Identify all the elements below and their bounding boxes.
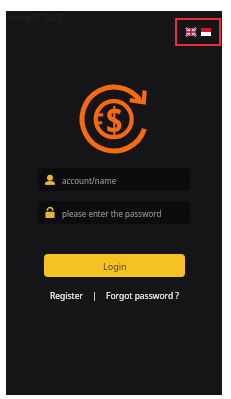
button[interactable]: Login	[44, 254, 185, 277]
button[interactable]: Forgot password ?	[106, 290, 180, 302]
staticText: Login	[103, 260, 127, 272]
staticText: string(5) "5.0.5"	[8, 12, 66, 23]
button[interactable]: Register	[50, 290, 83, 302]
button[interactable]: Change language	[175, 18, 221, 46]
staticText: account/name	[62, 175, 117, 186]
staticText: Register	[50, 290, 83, 302]
staticText: $	[106, 95, 123, 144]
staticText: Forgot password ?	[106, 290, 180, 302]
staticText: |	[92, 290, 97, 302]
staticText: please enter the password	[62, 208, 162, 219]
button[interactable]: please enter the password	[38, 201, 190, 224]
button[interactable]: account/name	[38, 168, 190, 191]
